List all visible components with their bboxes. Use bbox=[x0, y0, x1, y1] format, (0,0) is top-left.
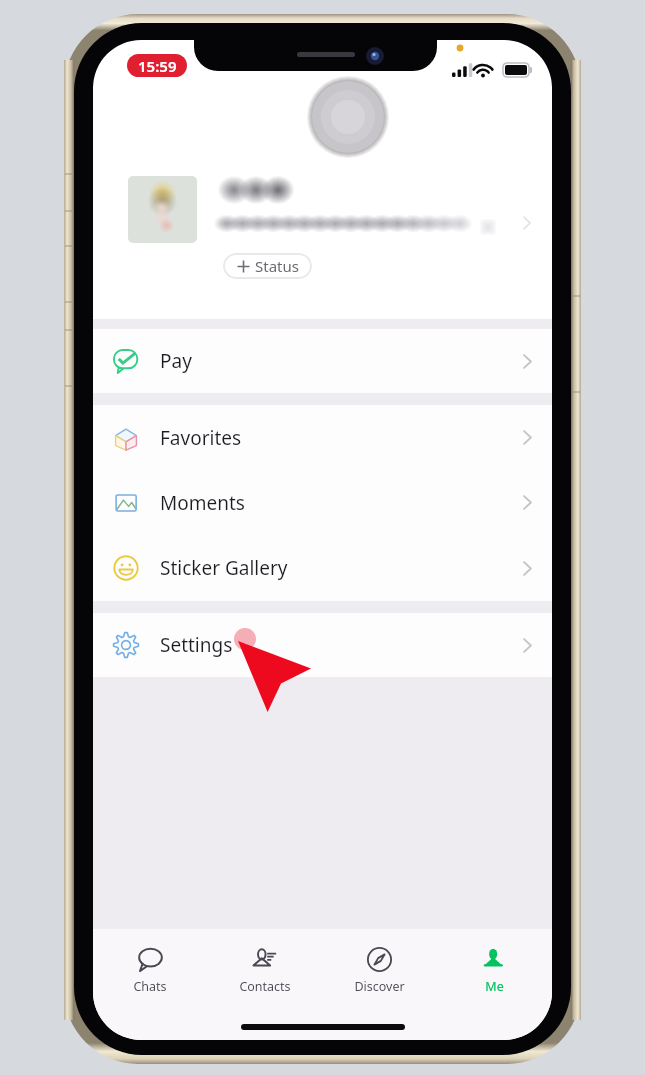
button[interactable]: Pay bbox=[93, 329, 552, 393]
staticText: Status bbox=[255, 256, 299, 276]
button[interactable]: Contacts bbox=[207, 929, 322, 1005]
button[interactable]: Settings bbox=[93, 613, 552, 677]
staticText: Settings bbox=[160, 632, 233, 658]
button[interactable]: Profile photo bbox=[128, 176, 197, 243]
staticText: 15:59 bbox=[138, 56, 177, 76]
button[interactable]: Sticker Gallery bbox=[93, 535, 552, 601]
button[interactable]: Favorites bbox=[93, 405, 552, 470]
staticText: Favorites bbox=[160, 425, 242, 451]
button[interactable]: My QR code bbox=[478, 217, 498, 237]
staticText: Pay bbox=[160, 348, 192, 374]
staticText: Discover bbox=[354, 978, 405, 995]
button[interactable]: Moments bbox=[93, 470, 552, 535]
staticText: Moments bbox=[160, 490, 245, 516]
button[interactable]: Chats bbox=[93, 929, 207, 1005]
button[interactable]: Me bbox=[437, 929, 552, 1005]
staticText: Sticker Gallery bbox=[160, 555, 288, 581]
button[interactable]: Discover bbox=[322, 929, 437, 1005]
button[interactable]: Status bbox=[223, 253, 312, 279]
staticText: Chats bbox=[133, 978, 167, 995]
staticText: Contacts bbox=[239, 978, 291, 995]
staticText: Me bbox=[485, 978, 504, 995]
